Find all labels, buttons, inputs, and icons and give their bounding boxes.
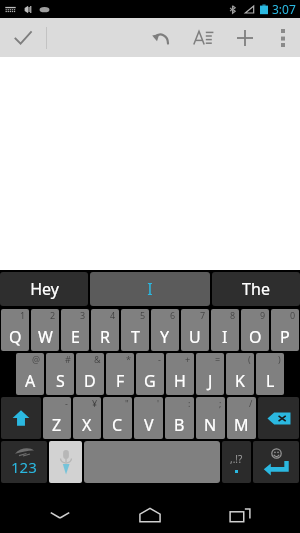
- button[interactable]: Done: [0, 18, 46, 57]
- staticText: V: [144, 414, 154, 436]
- button[interactable]: 2: [31, 309, 59, 351]
- button[interactable]: ,.!?: [222, 441, 251, 483]
- staticText: :: [188, 397, 191, 409]
- button[interactable]: Space: [84, 441, 220, 483]
- button[interactable]: 123: [1, 441, 47, 483]
- button[interactable]: /: [227, 397, 256, 439]
- staticText: /: [249, 397, 253, 409]
- staticText: #: [65, 353, 71, 365]
- staticText: R: [100, 326, 110, 348]
- button[interactable]: #: [46, 353, 74, 395]
- staticText: J: [208, 370, 213, 392]
- staticText: 0: [290, 309, 296, 321]
- staticText: Z: [52, 414, 62, 436]
- staticText: O: [249, 326, 262, 348]
- button[interactable]: 4: [91, 309, 119, 351]
- staticText: 2: [50, 309, 56, 321]
- staticText: U: [189, 326, 201, 348]
- staticText: P: [280, 326, 290, 348]
- staticText: -: [158, 353, 161, 365]
- staticText: 7: [200, 309, 206, 321]
- button[interactable]: ': [134, 397, 163, 439]
- button[interactable]: 5: [121, 309, 149, 351]
- button[interactable]: Back: [30, 497, 90, 533]
- staticText: E: [71, 326, 80, 348]
- button[interactable]: &: [76, 353, 104, 395]
- button[interactable]: Enter: [253, 441, 299, 483]
- staticText: (: [248, 353, 251, 365]
- button[interactable]: 9: [241, 309, 269, 351]
- button[interactable]: Hey: [0, 272, 88, 306]
- button[interactable]: 6: [151, 309, 179, 351]
- button[interactable]: ¥: [73, 397, 101, 439]
- staticText: ": [125, 397, 129, 409]
- button[interactable]: *: [106, 353, 134, 395]
- staticText: F: [116, 370, 125, 392]
- button[interactable]: I: [90, 272, 210, 306]
- button[interactable]: Home: [120, 497, 180, 533]
- staticText: C: [112, 414, 123, 436]
- button[interactable]: Add: [224, 18, 266, 57]
- button[interactable]: Backspace: [258, 397, 299, 439]
- staticText: I: [147, 278, 153, 300]
- button[interactable]: ): [256, 353, 284, 395]
- staticText: -: [65, 397, 68, 409]
- button[interactable]: +: [166, 353, 194, 395]
- button[interactable]: More options: [266, 18, 300, 57]
- staticText: X: [82, 414, 92, 436]
- staticText: Q: [9, 326, 22, 348]
- button[interactable]: 1: [1, 309, 29, 351]
- button[interactable]: Recent apps: [210, 497, 270, 533]
- staticText: Hey: [30, 278, 59, 300]
- staticText: ): [278, 353, 281, 365]
- staticText: H: [174, 370, 186, 392]
- staticText: 3:07: [272, 1, 296, 17]
- staticText: D: [84, 370, 96, 392]
- button[interactable]: 8: [211, 309, 239, 351]
- staticText: 6: [170, 309, 176, 321]
- button[interactable]: Text format: [182, 18, 224, 57]
- button[interactable]: Voice input: [49, 441, 82, 483]
- button[interactable]: -: [136, 353, 164, 395]
- button[interactable]: ;: [196, 397, 225, 439]
- button[interactable]: @: [16, 353, 44, 395]
- staticText: *: [126, 353, 131, 365]
- staticText: 5: [140, 309, 146, 321]
- button[interactable]: Shift: [1, 397, 41, 439]
- staticText: Y: [160, 326, 170, 348]
- staticText: L: [266, 370, 275, 392]
- staticText: &: [94, 353, 101, 365]
- button[interactable]: =: [196, 353, 224, 395]
- staticText: ¥: [92, 397, 98, 409]
- staticText: M: [234, 414, 249, 436]
- staticText: K: [235, 370, 245, 392]
- button[interactable]: The: [212, 272, 300, 306]
- staticText: 3: [80, 309, 86, 321]
- button[interactable]: -: [43, 397, 71, 439]
- button[interactable]: ": [103, 397, 132, 439]
- staticText: @: [32, 353, 41, 365]
- staticText: ,.!?: [230, 452, 243, 466]
- button[interactable]: (: [226, 353, 254, 395]
- staticText: 4: [110, 309, 116, 321]
- staticText: 1: [20, 309, 26, 321]
- staticText: B: [174, 414, 185, 436]
- staticText: ;: [219, 397, 222, 409]
- staticText: 123: [11, 457, 37, 477]
- staticText: ': [157, 397, 160, 409]
- staticText: T: [131, 326, 140, 348]
- staticText: 8: [230, 309, 236, 321]
- staticText: W: [38, 326, 53, 348]
- staticText: N: [204, 414, 217, 436]
- button[interactable]: 0: [271, 309, 299, 351]
- staticText: The: [242, 278, 270, 300]
- staticText: +: [185, 353, 191, 365]
- staticText: S: [56, 370, 65, 392]
- button[interactable]: 7: [181, 309, 209, 351]
- button[interactable]: 3: [61, 309, 89, 351]
- staticText: 9: [260, 309, 266, 321]
- staticText: A: [25, 370, 36, 392]
- button[interactable]: :: [165, 397, 194, 439]
- button[interactable]: Undo: [140, 18, 182, 57]
- staticText: =: [215, 353, 221, 365]
